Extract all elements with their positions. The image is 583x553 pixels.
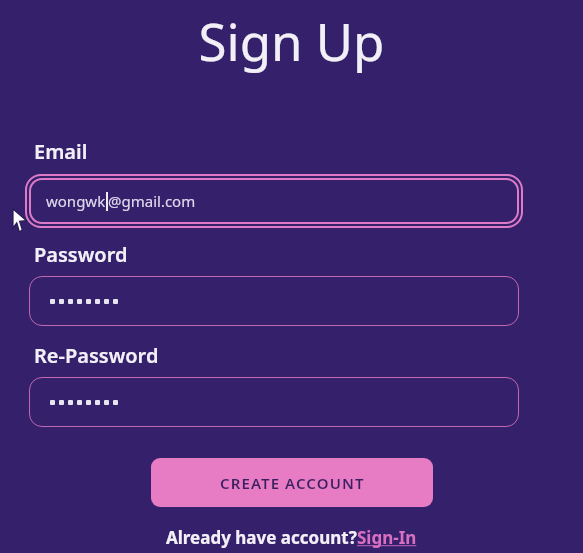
button[interactable]	[29, 276, 519, 326]
staticText: Email	[34, 138, 88, 165]
button[interactable]	[29, 377, 519, 427]
staticText: Sign-In	[357, 526, 417, 549]
other: Pointer	[13, 209, 27, 232]
button[interactable]: CREATE ACCOUNT	[151, 458, 433, 507]
staticText: CREATE ACCOUNT	[220, 473, 365, 493]
staticText: Password	[34, 241, 128, 268]
staticText: wongwk	[46, 191, 106, 211]
staticText: Already have account?	[166, 526, 357, 549]
staticText: Re-Password	[34, 342, 159, 369]
staticText: Sign Up	[0, 6, 583, 75]
button[interactable]: Sign-In	[357, 526, 417, 549]
button[interactable]: wongwk	[29, 178, 519, 224]
staticText: @gmail.com	[108, 191, 196, 211]
